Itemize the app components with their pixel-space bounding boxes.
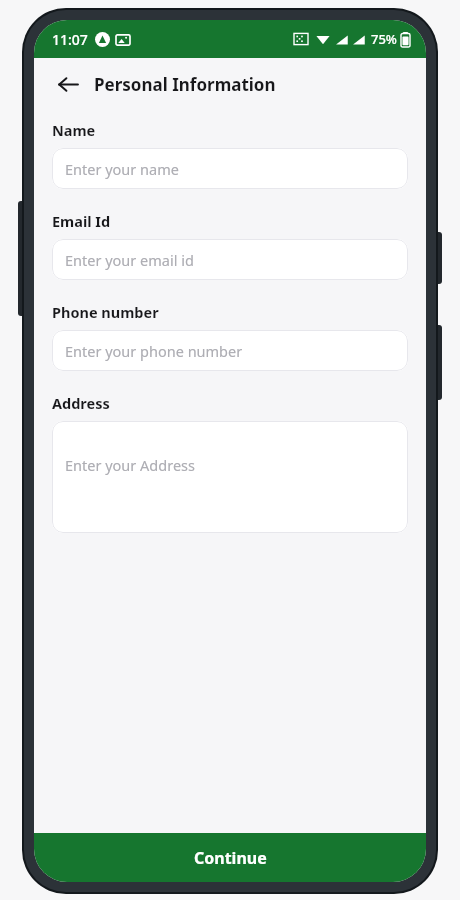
button[interactable]: Continue	[34, 833, 426, 882]
staticText: Phone number	[52, 302, 159, 322]
staticText: Address	[52, 393, 110, 413]
staticText: Enter your name	[65, 159, 179, 179]
staticText: Enter your phone number	[65, 341, 243, 361]
staticText: Email Id	[52, 211, 111, 231]
staticText: Enter your Address	[65, 455, 195, 475]
staticText: 75%	[371, 30, 397, 48]
staticText: Name	[52, 120, 96, 140]
button[interactable]: Enter your phone number	[52, 330, 408, 371]
button[interactable]: Enter your name	[52, 148, 408, 189]
staticText: Enter your email id	[65, 250, 194, 270]
button[interactable]: Enter your email id	[52, 239, 408, 280]
staticText: Continue	[194, 847, 267, 869]
button[interactable]: Enter your Address	[52, 421, 408, 533]
button[interactable]: Back	[52, 68, 84, 100]
staticText: 11:07	[52, 30, 88, 49]
staticText: Personal Information	[94, 73, 276, 96]
